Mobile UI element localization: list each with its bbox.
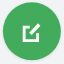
button[interactable]: Compose: [6, 6, 58, 58]
